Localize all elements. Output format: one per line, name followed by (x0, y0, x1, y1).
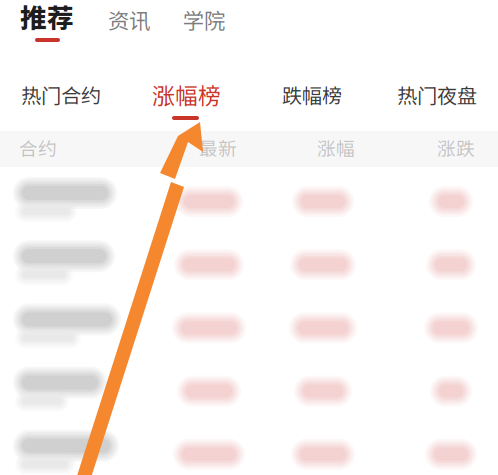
staticText: 涨幅榜 (152, 78, 221, 111)
button[interactable] (0, 0, 498, 475)
staticText: 最新 (199, 134, 237, 161)
button[interactable] (0, 0, 498, 475)
staticText: 合约 (19, 134, 57, 161)
staticText: 涨幅 (317, 134, 355, 161)
button[interactable]: 涨幅 (0, 0, 48, 22)
staticText: 热门合约 (21, 80, 101, 109)
button[interactable]: 资讯 (0, 0, 52, 26)
staticText: 资讯 (108, 4, 150, 35)
button[interactable]: 跌幅榜 (0, 0, 68, 24)
button[interactable]: 推荐 (0, 0, 66, 34)
button[interactable]: 涨幅榜 (0, 0, 78, 26)
button[interactable]: 涨跌 (0, 0, 48, 22)
button[interactable]: 热门夜盘 (0, 0, 88, 24)
staticText: 学院 (183, 4, 225, 35)
staticText: 热门夜盘 (397, 80, 477, 109)
button[interactable] (0, 0, 498, 475)
button[interactable]: 学院 (0, 0, 52, 26)
staticText: 涨跌 (437, 134, 475, 161)
button[interactable]: 热门合约 (0, 0, 88, 24)
button[interactable] (0, 0, 498, 475)
button[interactable] (0, 0, 498, 475)
staticText: 跌幅榜 (282, 80, 342, 109)
button[interactable]: 最新 (0, 0, 48, 22)
staticText: 推荐 (20, 0, 74, 36)
